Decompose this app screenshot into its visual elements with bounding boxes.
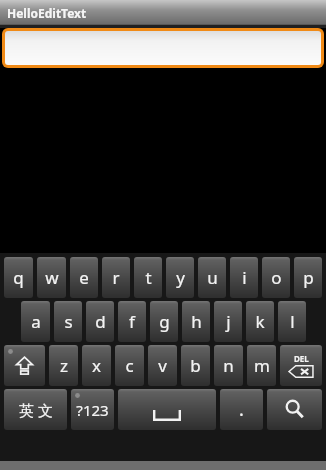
- staticText: h: [191, 310, 202, 333]
- staticText: p: [303, 266, 314, 289]
- staticText: i: [242, 266, 247, 289]
- button[interactable]: w: [37, 257, 66, 298]
- button[interactable]: d: [86, 301, 114, 342]
- button[interactable]: e: [70, 257, 98, 298]
- button[interactable]: k: [246, 301, 274, 342]
- button[interactable]: o: [262, 257, 290, 298]
- staticText: n: [223, 354, 234, 377]
- staticText: z: [60, 354, 68, 377]
- staticText: o: [271, 266, 282, 289]
- staticText: f: [129, 310, 135, 333]
- button[interactable]: z: [49, 345, 78, 386]
- staticText: j: [226, 310, 231, 333]
- button[interactable]: c: [115, 345, 144, 386]
- staticText: a: [31, 310, 41, 333]
- button[interactable]: ?123: [71, 389, 114, 430]
- button[interactable]: r: [102, 257, 130, 298]
- staticText: t: [145, 266, 152, 289]
- staticText: DEL: [294, 353, 309, 364]
- staticText: e: [79, 266, 89, 289]
- button[interactable]: p: [294, 257, 322, 298]
- button[interactable]: g: [150, 301, 178, 342]
- staticText: l: [290, 310, 295, 333]
- button[interactable]: a: [21, 301, 50, 342]
- staticText: .: [239, 397, 244, 422]
- button[interactable]: h: [182, 301, 210, 342]
- button[interactable]: 英 文: [4, 389, 67, 430]
- staticText: w: [45, 266, 59, 289]
- button[interactable]: Delete: [280, 345, 322, 386]
- staticText: ?123: [76, 400, 109, 420]
- button[interactable]: y: [166, 257, 194, 298]
- staticText: r: [112, 266, 120, 289]
- button[interactable]: Space: [118, 389, 216, 430]
- button[interactable]: i: [230, 257, 258, 298]
- staticText: k: [255, 310, 265, 333]
- button[interactable]: Shift: [4, 345, 45, 386]
- staticText: s: [64, 310, 73, 333]
- button[interactable]: b: [181, 345, 210, 386]
- button[interactable]: t: [134, 257, 162, 298]
- staticText: HelloEditText: [7, 5, 87, 21]
- staticText: v: [158, 354, 167, 377]
- staticText: c: [125, 354, 134, 377]
- button[interactable]: q: [4, 257, 33, 298]
- staticText: 英 文: [19, 400, 53, 420]
- button[interactable]: u: [198, 257, 226, 298]
- staticText: y: [176, 266, 185, 289]
- button[interactable]: m: [247, 345, 276, 386]
- button[interactable]: x: [82, 345, 111, 386]
- button[interactable]: [5, 31, 321, 65]
- button[interactable]: n: [214, 345, 243, 386]
- staticText: q: [13, 266, 24, 289]
- button[interactable]: v: [148, 345, 177, 386]
- button[interactable]: l: [278, 301, 306, 342]
- button[interactable]: s: [54, 301, 82, 342]
- button[interactable]: f: [118, 301, 146, 342]
- staticText: x: [92, 354, 101, 377]
- staticText: d: [95, 310, 106, 333]
- button[interactable]: Search: [267, 389, 322, 430]
- button[interactable]: j: [214, 301, 242, 342]
- staticText: b: [190, 354, 201, 377]
- staticText: u: [207, 266, 218, 289]
- staticText: m: [254, 354, 270, 377]
- button[interactable]: .: [220, 389, 263, 430]
- staticText: g: [159, 310, 170, 333]
